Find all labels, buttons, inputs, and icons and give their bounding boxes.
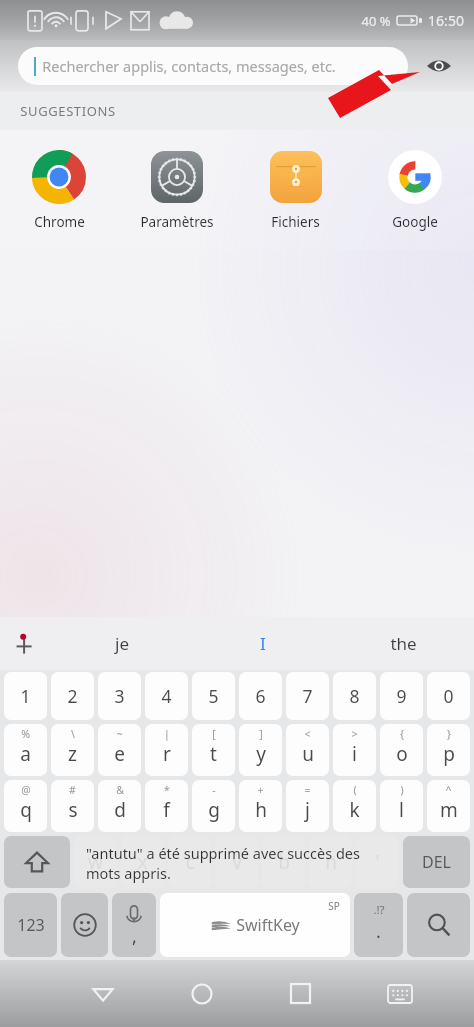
button[interactable]: DEL <box>403 836 470 888</box>
button[interactable]: 4 <box>145 672 188 720</box>
button[interactable]: Retour <box>53 960 152 1027</box>
button[interactable]: 0 <box>427 672 470 720</box>
staticText: - <box>212 783 216 797</box>
button[interactable]: 5 <box>192 672 235 720</box>
button[interactable]: # <box>51 780 94 832</box>
staticText: | <box>164 727 170 741</box>
staticText: \ <box>71 727 75 741</box>
staticText: < <box>304 727 311 741</box>
button[interactable]: Rechercher applis, contacts, messages, e… <box>18 47 408 85</box>
staticText: e <box>114 741 125 767</box>
staticText: ] <box>259 727 263 741</box>
button[interactable]: Espace <box>160 893 350 957</box>
staticText: x <box>137 849 148 875</box>
button[interactable]: 7 <box>286 672 329 720</box>
button[interactable]: Applications récentes <box>251 960 350 1027</box>
button[interactable]: Google <box>355 130 474 250</box>
staticText: p <box>443 741 455 767</box>
button[interactable]: 3 <box>98 672 141 720</box>
staticText: je <box>115 632 129 655</box>
button[interactable]: v <box>215 836 258 888</box>
staticText: m <box>440 797 458 823</box>
staticText: n <box>325 849 337 875</box>
staticText: # <box>69 783 76 797</box>
staticText: w <box>88 849 103 875</box>
button[interactable]: w <box>74 836 117 888</box>
staticText: b <box>278 849 290 875</box>
button[interactable]: 1 <box>4 672 47 720</box>
button[interactable]: x <box>121 836 164 888</box>
button[interactable]: Fichiers <box>236 130 355 250</box>
button[interactable]: + <box>239 780 282 832</box>
staticText: ) <box>400 783 404 797</box>
staticText: I <box>260 632 266 655</box>
button[interactable]: 6 <box>239 672 282 720</box>
button[interactable]: Majuscule <box>4 836 70 888</box>
staticText: 8 <box>349 684 360 708</box>
staticText: 0 <box>443 684 454 708</box>
staticText: + <box>257 783 264 797</box>
staticText: Fichiers <box>271 213 320 231</box>
staticText: i <box>352 741 357 767</box>
button[interactable]: & <box>98 780 141 832</box>
button[interactable]: Emoji <box>61 893 108 957</box>
button[interactable]: c <box>168 836 211 888</box>
staticText: o <box>396 741 408 767</box>
staticText: 2 <box>67 684 78 708</box>
button[interactable]: Chrome <box>0 130 118 250</box>
button[interactable]: b <box>262 836 305 888</box>
button[interactable]: Rechercher <box>407 893 470 957</box>
button[interactable]: je <box>52 617 192 670</box>
button[interactable]: - <box>192 780 235 832</box>
button[interactable]: ] <box>239 724 282 776</box>
button[interactable]: Masquer le clavier <box>350 960 449 1027</box>
button[interactable]: | <box>145 724 188 776</box>
button[interactable]: Paramètres <box>118 130 236 250</box>
button[interactable]: ' <box>356 836 399 888</box>
staticText: 9 <box>396 684 407 708</box>
button[interactable]: Saisie vocale <box>112 893 156 957</box>
button[interactable]: ) <box>380 780 423 832</box>
button[interactable]: Accueil <box>152 960 251 1027</box>
button[interactable]: < <box>286 724 329 776</box>
button[interactable]: ^ <box>427 780 470 832</box>
button[interactable]: [ <box>192 724 235 776</box>
button[interactable]: the <box>333 617 474 670</box>
button[interactable]: 123 <box>4 893 57 957</box>
staticText: * <box>164 783 170 797</box>
button[interactable]: .!? <box>354 893 403 957</box>
staticText: "antutu" a été supprimé avec succès des … <box>86 843 386 883</box>
staticText: h <box>255 797 267 823</box>
staticText: { <box>400 727 404 741</box>
button[interactable]: I <box>192 617 333 670</box>
button[interactable]: > <box>333 724 376 776</box>
staticText: Chrome <box>34 213 85 231</box>
staticText: 5 <box>208 684 219 708</box>
button[interactable]: \ <box>51 724 94 776</box>
staticText: SUGGESTIONS <box>20 102 116 120</box>
button[interactable]: } <box>427 724 470 776</box>
staticText: @ <box>21 783 31 797</box>
staticText: r <box>163 741 171 767</box>
staticText: f <box>163 797 170 823</box>
staticText: 1 <box>20 684 31 708</box>
button[interactable]: n <box>309 836 352 888</box>
button[interactable]: = <box>286 780 329 832</box>
staticText: & <box>116 783 124 797</box>
button[interactable]: 9 <box>380 672 423 720</box>
staticText: ( <box>353 783 357 797</box>
button[interactable]: % <box>4 724 47 776</box>
button[interactable]: 2 <box>51 672 94 720</box>
staticText: l <box>399 797 404 823</box>
staticText: .!? <box>373 902 385 918</box>
staticText: = <box>304 783 311 797</box>
button[interactable]: ~ <box>98 724 141 776</box>
button[interactable]: { <box>380 724 423 776</box>
button[interactable]: ( <box>333 780 376 832</box>
button[interactable]: 8 <box>333 672 376 720</box>
staticText: a <box>20 741 31 767</box>
button[interactable]: * <box>145 780 188 832</box>
button[interactable]: Afficher les applis masquées <box>422 49 456 83</box>
button[interactable]: @ <box>4 780 47 832</box>
staticText: s <box>68 797 78 823</box>
